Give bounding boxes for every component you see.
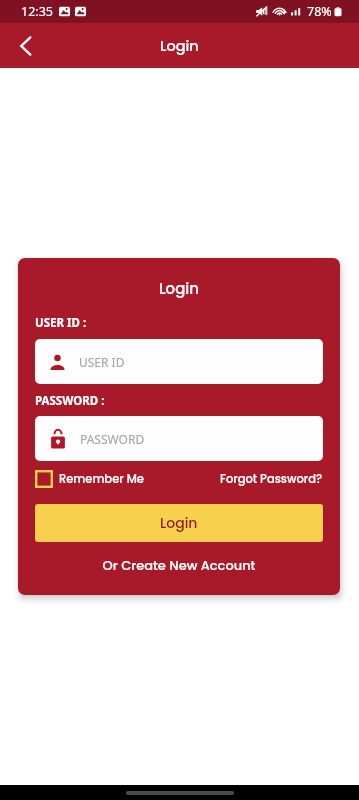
- staticText: USER ID :: [35, 315, 87, 331]
- staticText: Remember Me: [59, 471, 144, 487]
- staticText: USER ID: [79, 354, 125, 370]
- button[interactable]: Or Create New Account: [35, 556, 323, 574]
- button[interactable]: Login: [35, 504, 323, 542]
- staticText: PASSWORD: [80, 431, 145, 447]
- button[interactable]: USER ID: [35, 339, 323, 384]
- button[interactable]: PASSWORD: [35, 416, 323, 461]
- staticText: Login: [160, 513, 198, 533]
- staticText: PASSWORD :: [35, 393, 105, 409]
- staticText: Login: [160, 36, 199, 56]
- staticText: 78%: [307, 3, 332, 20]
- staticText: 12:35: [21, 3, 53, 20]
- button[interactable]: Forgot Password?: [220, 471, 323, 487]
- staticText: Login: [35, 278, 323, 299]
- button[interactable]: Back: [7, 28, 43, 64]
- button[interactable]: Remember Me: [35, 470, 144, 488]
